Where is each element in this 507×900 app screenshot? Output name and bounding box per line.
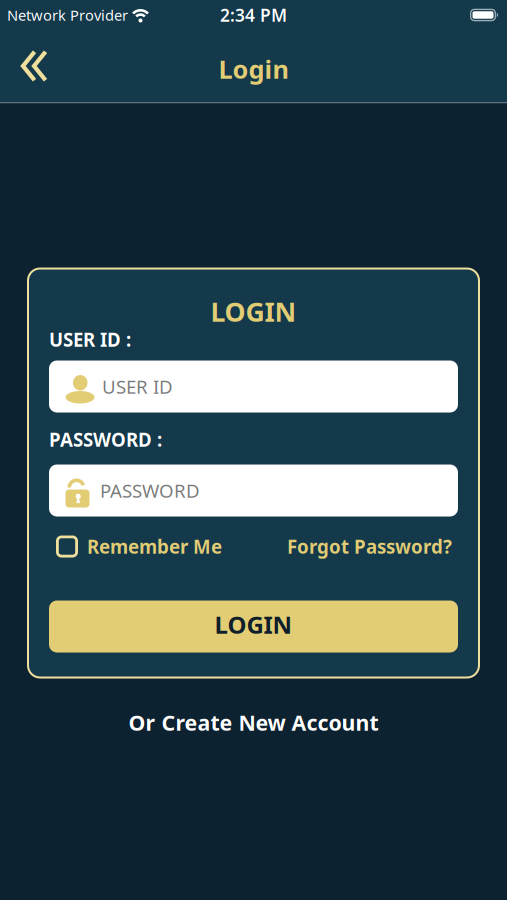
staticText: 2:34 PM [220,3,287,26]
staticText: LOGIN [210,294,296,329]
staticText: Forgot Password? [287,534,452,559]
button[interactable]: Or Create New Account [128,678,378,734]
button[interactable]: Remember Me [49,534,222,559]
staticText: USER ID : [49,327,131,352]
staticText: Login [218,52,288,86]
button[interactable]: Forgot Password? [287,534,458,559]
button[interactable]: LOGIN [49,600,458,652]
staticText: PASSWORD [100,478,200,503]
staticText: Remember Me [87,534,222,559]
button[interactable]: PASSWORD [49,464,458,516]
staticText: Or Create New Account [128,708,378,737]
button[interactable]: Back [0,30,48,102]
button[interactable]: USER ID [49,360,458,412]
staticText: USER ID [102,374,173,399]
staticText: Network Provider [7,5,128,25]
staticText: LOGIN [214,609,292,640]
staticText: PASSWORD : [49,427,162,452]
